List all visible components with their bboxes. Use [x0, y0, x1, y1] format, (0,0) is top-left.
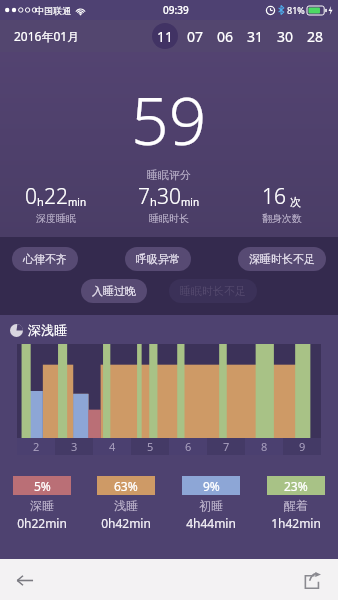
staticText: 8	[261, 439, 268, 454]
staticText: h	[150, 194, 157, 209]
staticText: 28	[307, 27, 324, 46]
staticText: 3	[71, 439, 78, 454]
button[interactable]: 23%	[253, 476, 338, 531]
staticText: 0	[25, 182, 37, 211]
staticText: 浅睡	[114, 498, 138, 513]
button[interactable]: 06	[212, 23, 238, 49]
button[interactable]: 5%	[0, 476, 84, 531]
staticText: 心律不齐	[23, 252, 67, 266]
staticText: 81%	[287, 4, 305, 16]
staticText: 4h44min	[186, 515, 236, 531]
staticText: 醒着	[284, 498, 308, 513]
staticText: 2016年01月	[14, 28, 80, 44]
button[interactable]: Back	[4, 560, 44, 600]
staticText: 5	[147, 439, 154, 454]
button[interactable]: 睡眠时长不足	[169, 279, 257, 303]
staticText: 06	[217, 27, 234, 46]
staticText: 初睡	[199, 498, 223, 513]
staticText: 30	[157, 182, 181, 211]
staticText: 中国联通	[35, 5, 71, 16]
button[interactable]: 深睡时长不足	[238, 247, 326, 271]
button[interactable]: 28	[302, 23, 328, 49]
staticText: 睡眠时长	[149, 212, 189, 223]
staticText: 入睡过晚	[92, 284, 136, 298]
staticText: min	[68, 195, 87, 209]
staticText: 9%	[203, 478, 220, 494]
staticText: 深睡时长不足	[249, 252, 315, 266]
staticText: 63%	[114, 478, 138, 494]
button[interactable]: 入睡过晚	[81, 279, 147, 303]
button[interactable]: 30	[272, 23, 298, 49]
staticText: 7	[138, 182, 150, 211]
staticText: 0h22min	[17, 515, 67, 531]
button[interactable]: 31	[242, 23, 268, 49]
button[interactable]: Share	[292, 560, 332, 600]
staticText: 呼吸异常	[136, 252, 180, 266]
staticText: 30	[277, 27, 294, 46]
staticText: 22	[44, 182, 68, 211]
staticText: 深睡	[30, 498, 54, 513]
staticText: 16	[262, 182, 286, 211]
staticText: 5%	[34, 478, 51, 494]
staticText: 4	[109, 439, 116, 454]
staticText: 深浅睡	[28, 322, 67, 338]
button[interactable]: 63%	[84, 476, 168, 531]
staticText: 9	[299, 439, 306, 454]
staticText: 6	[185, 439, 192, 454]
staticText: 次	[290, 195, 301, 209]
staticText: 2	[33, 439, 40, 454]
staticText: 31	[247, 27, 264, 46]
staticText: 睡眠时长不足	[180, 284, 246, 298]
button[interactable]: 9%	[168, 476, 253, 531]
staticText: 07	[187, 27, 204, 46]
staticText: 23%	[284, 478, 308, 494]
staticText: 1h42min	[271, 515, 321, 531]
button[interactable]: 呼吸异常	[125, 247, 191, 271]
staticText: 09:39	[163, 3, 189, 17]
staticText: 睡眠评分	[147, 168, 191, 182]
staticText: h	[37, 194, 44, 209]
staticText: 翻身次数	[262, 212, 302, 223]
staticText: 7	[223, 439, 230, 454]
staticText: 11	[157, 27, 174, 46]
staticText: 深度睡眠	[36, 212, 76, 223]
button[interactable]: 07	[182, 23, 208, 49]
staticText: 0h42min	[101, 515, 151, 531]
staticText: min	[181, 195, 200, 209]
button[interactable]: 11	[152, 23, 178, 49]
staticText: 59	[131, 74, 207, 164]
button[interactable]: 心律不齐	[12, 247, 78, 271]
